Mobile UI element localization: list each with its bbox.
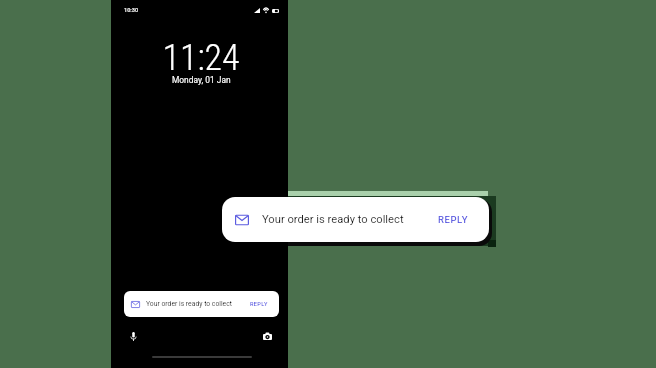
button[interactable]: Camera (260, 329, 274, 343)
staticText: REPLY (250, 301, 268, 308)
button[interactable]: Your order is ready to collect (222, 197, 489, 242)
staticText: Monday, 01 Jan (172, 75, 231, 85)
button[interactable]: Your order is ready to collect (124, 291, 279, 317)
button[interactable]: REPLY (250, 301, 268, 308)
staticText: REPLY (438, 214, 469, 225)
staticText: 10:30 (124, 7, 139, 14)
staticText: Your order is ready to collect (262, 213, 404, 226)
staticText: Your order is ready to collect (146, 300, 232, 308)
button[interactable]: Voice assistant (126, 329, 140, 343)
staticText: 11:24 (162, 37, 240, 79)
button[interactable]: REPLY (438, 214, 469, 225)
